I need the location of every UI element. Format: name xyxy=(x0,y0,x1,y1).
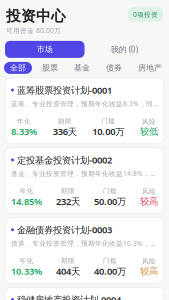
staticText: 基金 xyxy=(74,63,90,73)
staticText: 较高 xyxy=(140,265,158,277)
staticText: 风险 xyxy=(142,118,156,126)
button[interactable]: 房地产 xyxy=(132,62,168,74)
staticText: 期限 xyxy=(61,257,75,265)
staticText: 蓝筹、专业投资管理，预期年化收益8.3%，同… xyxy=(11,99,158,108)
staticText: 232天 xyxy=(56,195,80,207)
staticText: 较低 xyxy=(140,126,158,137)
button[interactable]: 我的 (0) xyxy=(84,41,164,58)
staticText: 年化 xyxy=(19,257,33,265)
staticText: 金融债券投资计划-0003 xyxy=(17,223,112,236)
staticText: 404天 xyxy=(56,265,80,277)
staticText: 定投基金投资计划-0002 xyxy=(17,154,112,166)
staticText: 股票 xyxy=(42,63,58,73)
staticText: 10.00万 xyxy=(92,125,124,138)
button[interactable]: 稳健房地产投资计划-0004 xyxy=(5,287,164,300)
staticText: 40.00万 xyxy=(94,265,126,277)
staticText: 年化 xyxy=(17,117,31,125)
button[interactable]: 基金 xyxy=(68,62,96,74)
staticText: 风险 xyxy=(142,187,156,196)
button[interactable]: 金融债券投资计划-0003 xyxy=(5,217,164,283)
button[interactable]: 定投基金投资计划-0002 xyxy=(5,148,164,213)
button[interactable]: 蓝筹股票投资计划-0001 xyxy=(5,78,164,144)
staticText: 336天 xyxy=(53,125,77,138)
button[interactable]: 债券 xyxy=(100,62,128,74)
staticText: 10.33% xyxy=(11,265,42,277)
staticText: 门槛 xyxy=(101,117,115,125)
staticText: 基金、专业投资管理，预期年化收益14.8%，… xyxy=(11,169,155,178)
button[interactable]: 市场 xyxy=(5,41,84,58)
staticText: 全部 xyxy=(10,63,26,73)
staticText: 债券、专业投资管理，预期年化收益10.3%，… xyxy=(11,239,155,248)
staticText: 门槛 xyxy=(103,257,117,265)
staticText: 市场 xyxy=(37,44,53,54)
staticText: 蓝筹股票投资计划-0001 xyxy=(17,84,112,96)
staticText: 0项投资 xyxy=(133,10,158,19)
staticText: 14.85% xyxy=(11,195,42,207)
staticText: 50.00万 xyxy=(94,195,126,207)
staticText: 8.33% xyxy=(11,125,37,138)
staticText: 债券 xyxy=(106,63,122,73)
staticText: 门槛 xyxy=(103,187,117,195)
staticText: 我的 (0) xyxy=(111,44,138,55)
button[interactable]: 股票 xyxy=(36,62,64,74)
staticText: 年化 xyxy=(19,187,33,195)
button[interactable]: 全部 xyxy=(4,62,32,74)
staticText: 可用资金 80.00万 xyxy=(6,26,61,35)
staticText: 房地产 xyxy=(138,63,162,73)
staticText: 风险 xyxy=(142,257,156,265)
staticText: 较高 xyxy=(140,196,158,207)
staticText: 期限 xyxy=(58,117,72,125)
staticText: 稳健房地产投资计划-0004 xyxy=(17,293,121,300)
staticText: 投资中心 xyxy=(6,7,66,25)
staticText: 期限 xyxy=(61,187,75,195)
